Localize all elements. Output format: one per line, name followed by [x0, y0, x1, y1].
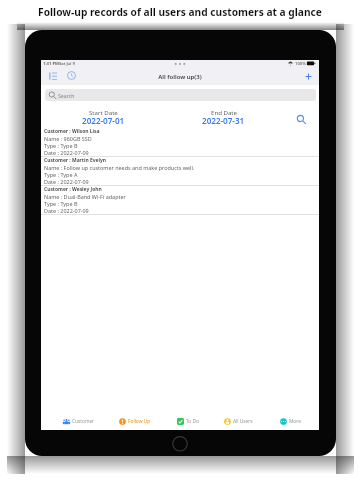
staticText: Follow Up — [128, 418, 151, 425]
staticText: 2022-07-01 — [82, 115, 125, 126]
button[interactable]: Search records — [295, 113, 307, 125]
staticText: All follow up(3) — [41, 73, 319, 81]
staticText: Search — [58, 92, 75, 99]
staticText: Date : 2022-07-09 — [44, 178, 89, 185]
button[interactable]: Customer — [63, 412, 95, 430]
staticText: Name : Follow up customer needs and make… — [44, 164, 195, 171]
staticText: Customer : Martin Evelyn — [44, 157, 106, 164]
staticText: Type : Type A — [44, 171, 78, 178]
staticText: 100% — [295, 61, 306, 67]
staticText: Type : Type B — [44, 142, 78, 149]
staticText: More — [289, 418, 301, 425]
staticText: Customer — [72, 418, 95, 425]
staticText: Name : 960GB SSD — [44, 135, 92, 142]
staticText: Type : Type B — [44, 200, 78, 207]
button[interactable]: Add — [304, 72, 313, 81]
staticText: End Date — [211, 108, 237, 116]
staticText: Date : 2022-07-09 — [44, 207, 89, 214]
button[interactable]: End Date — [182, 108, 264, 127]
staticText: Sat Jul 9 — [59, 61, 75, 67]
staticText: All Users — [233, 418, 253, 425]
button[interactable]: Customer : Wilson Lisa — [41, 128, 319, 157]
staticText: Customer : Wesley John — [44, 186, 102, 193]
staticText: Date : 2022-07-09 — [44, 149, 89, 156]
button[interactable]: Customer : Wesley John — [41, 186, 319, 215]
staticText: Start Date — [89, 108, 118, 116]
button[interactable]: To Do — [177, 412, 199, 430]
button[interactable]: Sidebar — [49, 72, 57, 80]
button[interactable]: More — [280, 412, 301, 430]
button[interactable]: Start Date — [62, 108, 144, 127]
staticText: 1:31 PM — [43, 61, 59, 67]
button[interactable]: Search — [45, 89, 316, 101]
staticText: Name : Dual-Band Wi-Fi adapter — [44, 193, 126, 200]
staticText: Customer : Wilson Lisa — [44, 128, 100, 135]
button[interactable]: Customer : Martin Evelyn — [41, 157, 319, 186]
staticText: To Do — [186, 418, 199, 425]
staticText: 2022-07-31 — [202, 115, 245, 126]
button[interactable]: All Users — [224, 412, 253, 430]
button[interactable]: Follow Up — [119, 412, 151, 430]
staticText: Follow-up records of all users and custo… — [0, 5, 360, 19]
button[interactable]: History — [67, 71, 76, 80]
